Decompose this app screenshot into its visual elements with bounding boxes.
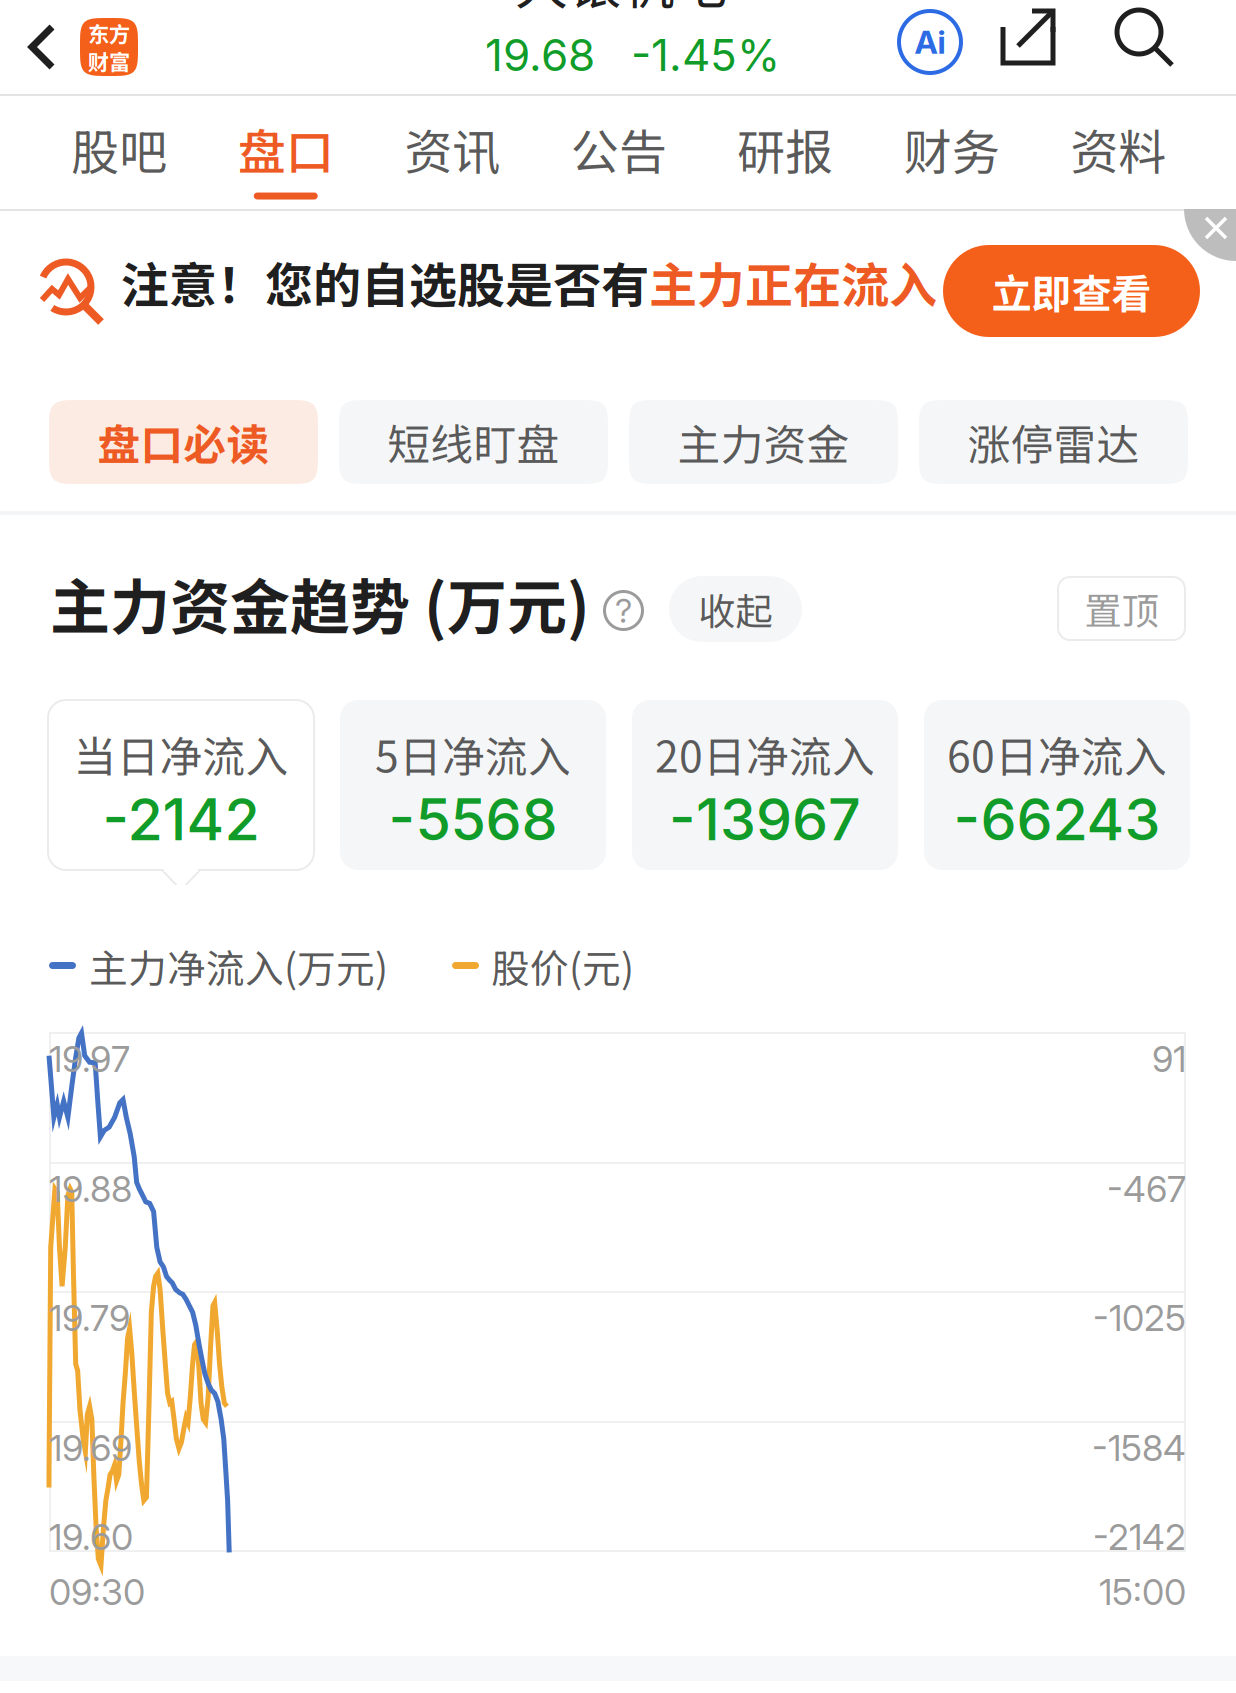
staticText: 主力资金趋势 (万元) <box>50 560 590 646</box>
staticText: -2142 <box>102 785 259 854</box>
button[interactable]: 股吧 <box>36 96 202 209</box>
staticText: 注意！您的自选股是否有 <box>121 247 649 317</box>
staticText: 资料 <box>1070 114 1166 183</box>
button[interactable]: 涨停雷达 <box>919 400 1188 484</box>
staticText: -2142 <box>1093 1515 1186 1559</box>
button[interactable]: 5日净流入 <box>340 700 606 870</box>
button[interactable]: 研报 <box>702 96 868 209</box>
button[interactable]: 资料 <box>1035 96 1201 209</box>
staticText: -13967 <box>669 785 861 854</box>
staticText: 19.88 <box>49 1167 132 1211</box>
staticText: 19.69 <box>49 1426 132 1470</box>
button[interactable]: 关闭 <box>1184 209 1236 261</box>
button[interactable]: 分享 <box>1000 8 1058 68</box>
staticText: 收起 <box>698 582 772 636</box>
staticText: 短线盯盘 <box>387 411 559 473</box>
staticText: 主力资金 <box>677 411 849 473</box>
button[interactable]: 公告 <box>535 96 702 209</box>
button[interactable]: AI助手 <box>898 10 962 74</box>
staticText: 91 <box>1152 1037 1186 1081</box>
button[interactable]: 立即查看 <box>943 245 1200 337</box>
staticText: 立即查看 <box>991 262 1151 320</box>
staticText: -1025 <box>1093 1296 1186 1340</box>
button[interactable]: 短线盯盘 <box>339 400 608 484</box>
staticText: 主力正在流入 <box>649 247 937 317</box>
button[interactable]: 置顶 <box>1058 577 1185 640</box>
button[interactable]: 资讯 <box>369 96 535 209</box>
button[interactable]: 盘口必读 <box>49 400 318 484</box>
staticText: 19.68 -1.45% <box>485 28 780 82</box>
staticText: -467 <box>1107 1167 1186 1211</box>
button[interactable]: 搜索 <box>1114 7 1176 69</box>
staticText: Ai <box>914 23 945 61</box>
staticText: 大银机电 <box>515 0 727 20</box>
button[interactable]: 20日净流入 <box>632 700 898 870</box>
staticText: ? <box>615 590 632 631</box>
staticText: 15:00 <box>1099 1570 1186 1614</box>
staticText: -66243 <box>953 785 1160 854</box>
button[interactable]: 财务 <box>868 96 1035 209</box>
staticText: 20日净流入 <box>655 723 875 785</box>
button[interactable]: 说明 <box>604 591 643 630</box>
staticText: 盘口必读 <box>97 411 269 473</box>
staticText: 60日净流入 <box>947 723 1167 785</box>
staticText: 19.79 <box>49 1296 130 1340</box>
staticText: 19.97 <box>49 1037 130 1081</box>
staticText: 股吧 <box>71 114 167 183</box>
staticText: 19.60 <box>49 1515 133 1559</box>
staticText: 财务 <box>904 114 1000 183</box>
staticText: 置顶 <box>1084 581 1158 636</box>
staticText: 涨停雷达 <box>967 411 1139 473</box>
button[interactable]: 返回 <box>20 0 148 94</box>
staticText: 研报 <box>737 114 833 183</box>
button[interactable]: 当日净流入 <box>48 700 314 870</box>
staticText: 盘口 <box>238 114 334 183</box>
staticText: 股价(元) <box>491 938 634 994</box>
staticText: 当日净流入 <box>73 723 288 785</box>
staticText: 09:30 <box>49 1570 145 1614</box>
staticText: 主力净流入(万元) <box>89 938 388 994</box>
button[interactable]: 收起 <box>669 576 802 642</box>
button[interactable]: 60日净流入 <box>924 700 1190 870</box>
staticText: 东方 <box>88 18 130 48</box>
staticText: 财富 <box>88 45 130 76</box>
staticText: 5日净流入 <box>375 723 571 785</box>
button[interactable]: 主力资金 <box>629 400 898 484</box>
button[interactable]: 盘口 <box>202 96 369 209</box>
staticText: -1584 <box>1092 1426 1186 1470</box>
staticText: 资讯 <box>404 114 500 183</box>
staticText: 公告 <box>571 114 667 183</box>
staticText: -5568 <box>388 785 557 854</box>
